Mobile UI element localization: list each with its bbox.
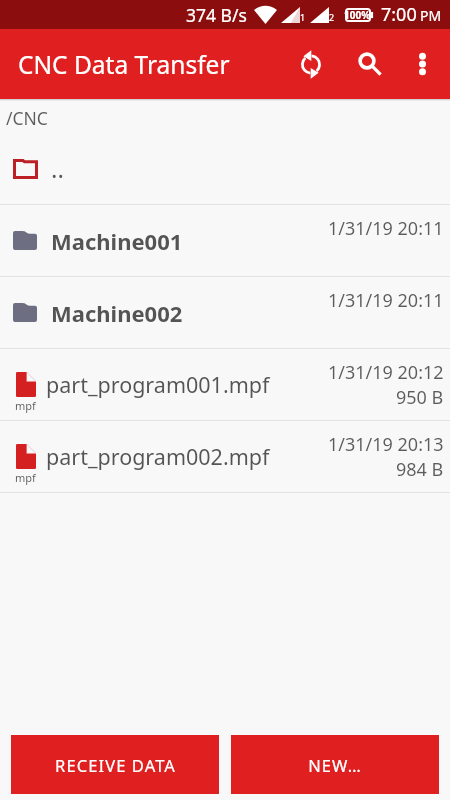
staticText: 2 [329, 11, 335, 23]
staticText: 950 B [396, 385, 444, 410]
staticText: NEW… [308, 754, 362, 776]
staticText: RECEIVE DATA [55, 754, 176, 776]
staticText: 1 [300, 11, 306, 23]
staticText: 7:00 [381, 2, 417, 27]
button[interactable]: Search [344, 29, 395, 99]
staticText: Machine001 [51, 226, 183, 256]
button[interactable]: mpf [0, 349, 450, 420]
staticText: 1/31/19 20:13 [328, 432, 444, 457]
staticText: Machine002 [51, 298, 183, 328]
button[interactable]: More options [395, 29, 450, 99]
staticText: 1/31/19 20:12 [328, 360, 444, 385]
staticText: mpf [15, 398, 36, 413]
staticText: PM [420, 6, 442, 25]
staticText: 1/31/19 20:11 [328, 288, 444, 313]
button[interactable]: NEW… [231, 735, 439, 794]
staticText: 374 B/s [186, 3, 247, 27]
staticText: part_program001.mpf [46, 370, 270, 399]
button[interactable]: Machine001 [0, 205, 450, 276]
staticText: 984 B [396, 457, 444, 482]
staticText: .. [51, 152, 64, 185]
staticText: /CNC [6, 106, 48, 130]
staticText: part_program002.mpf [46, 442, 270, 471]
button[interactable]: mpf [0, 421, 450, 492]
staticText: 1/31/19 20:11 [328, 216, 444, 241]
button[interactable]: Refresh [277, 29, 344, 99]
button[interactable]: Machine002 [0, 277, 450, 348]
button[interactable]: .. [0, 133, 450, 204]
staticText: 100% [344, 8, 371, 22]
button[interactable]: RECEIVE DATA [11, 735, 219, 794]
staticText: CNC Data Transfer [18, 48, 230, 81]
staticText: mpf [15, 470, 36, 485]
